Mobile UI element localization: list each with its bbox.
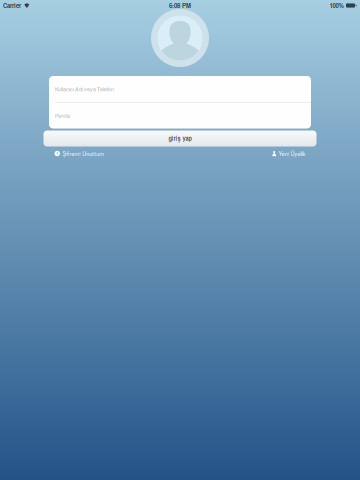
staticText: Carrier: [3, 1, 21, 10]
staticText: 6:08 PM: [169, 1, 191, 10]
button[interactable]: Yeni Üyelik: [272, 149, 305, 157]
staticText: 100%: [329, 1, 343, 10]
staticText: Yeni Üyelik: [278, 149, 305, 157]
staticText: giriş yap: [168, 134, 191, 142]
staticText: Parola: [55, 112, 70, 119]
staticText: Şifremi Unuttum: [62, 149, 104, 157]
staticText: Kullanıcı Adı veya Telefon: [55, 85, 114, 93]
button[interactable]: giriş yap: [43, 130, 316, 146]
button[interactable]: Şifremi Unuttum: [54, 149, 104, 157]
